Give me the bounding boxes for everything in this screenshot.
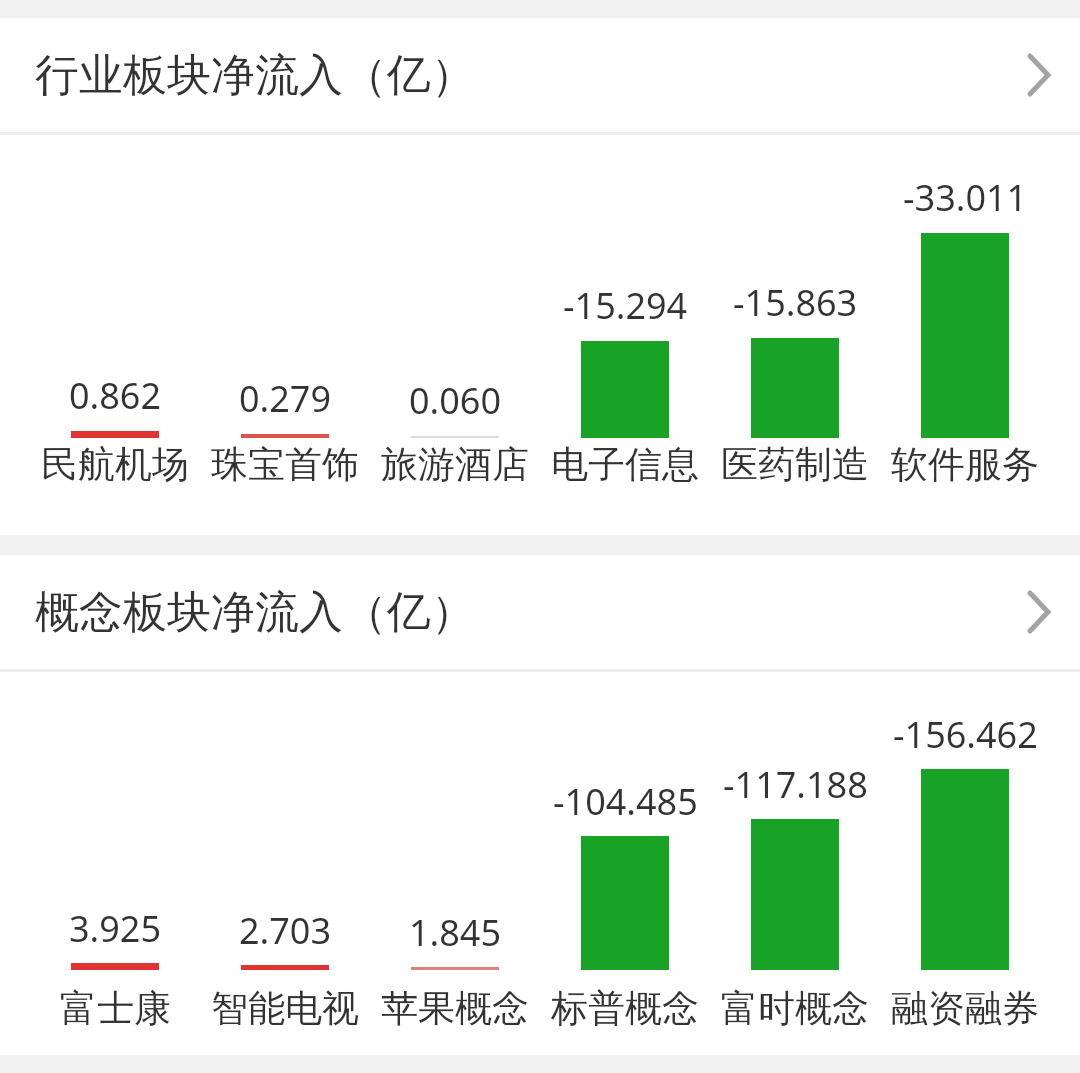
staticText: 0.862	[69, 371, 162, 420]
staticText: 概念板块净流入（亿）	[35, 585, 475, 640]
staticText: -104.485	[553, 777, 698, 826]
staticText: 旅游酒店	[381, 441, 529, 488]
staticText: 3.925	[69, 904, 162, 953]
staticText: 标普概念	[551, 985, 699, 1032]
staticText: 0.060	[409, 376, 502, 425]
staticText: 富时概念	[721, 985, 869, 1032]
staticText: 民航机场	[41, 441, 189, 488]
staticText: -156.462	[893, 710, 1038, 759]
staticText: -15.294	[563, 281, 688, 330]
staticText: -15.863	[733, 278, 858, 327]
staticText: 行业板块净流入（亿）	[35, 48, 475, 103]
staticText: 珠宝首饰	[211, 441, 359, 488]
staticText: 融资融券	[891, 985, 1039, 1032]
staticText: -33.011	[903, 173, 1028, 222]
staticText: 电子信息	[551, 441, 699, 488]
staticText: 2.703	[239, 906, 332, 955]
staticText: 软件服务	[891, 441, 1039, 488]
staticText: -117.188	[723, 760, 868, 809]
staticText: 0.279	[239, 374, 332, 423]
staticText: 苹果概念	[381, 985, 529, 1032]
staticText: 智能电视	[211, 985, 359, 1032]
staticText: 医药制造	[721, 441, 869, 488]
staticText: 富士康	[60, 985, 171, 1032]
staticText: 1.845	[409, 908, 502, 957]
